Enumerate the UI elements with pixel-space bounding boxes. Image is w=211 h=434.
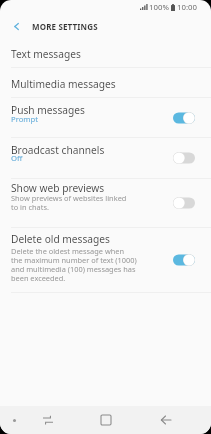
button[interactable]: Back [154,408,178,432]
button[interactable]: Show web previews [0,179,211,227]
staticText: Text messages [11,47,81,61]
staticText: Delete old messages [11,232,110,246]
button[interactable]: Broadcast channels [0,138,211,178]
staticText: Show previews of websites linked to in c… [11,193,127,212]
button[interactable]: Multimedia messages [0,68,211,97]
staticText: 100% [149,2,169,13]
button[interactable]: Push messages [0,98,211,137]
button[interactable]: Toggle [173,254,195,266]
button[interactable]: Home [94,408,118,432]
button[interactable]: Recent apps [36,408,60,432]
staticText: Delete the oldest message when the maxim… [11,246,137,283]
staticText: Off [11,153,23,163]
staticText: Multimedia messages [11,77,116,91]
staticText: Prompt [11,114,39,124]
button[interactable]: Toggle [173,152,195,164]
button[interactable]: Toggle [173,197,195,209]
staticText: Show web previews [11,181,105,195]
button[interactable]: Toggle [173,112,195,124]
staticText: MORE SETTINGS [32,21,98,32]
staticText: Push messages [11,103,85,117]
staticText: Broadcast channels [11,143,105,157]
button[interactable]: Back [0,14,32,38]
button[interactable]: Delete old messages [0,228,211,292]
button[interactable]: Text messages [0,38,211,67]
staticText: 10:00 [177,2,197,13]
